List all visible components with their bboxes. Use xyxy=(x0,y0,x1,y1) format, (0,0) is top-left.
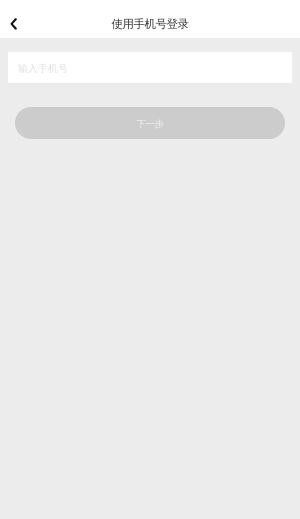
staticText: 输入手机号 xyxy=(18,62,68,75)
button[interactable]: Back xyxy=(0,10,28,38)
button[interactable]: 下一步 xyxy=(15,107,285,139)
staticText: 使用手机号登录 xyxy=(111,17,188,31)
staticText: 下一步 xyxy=(136,118,163,130)
